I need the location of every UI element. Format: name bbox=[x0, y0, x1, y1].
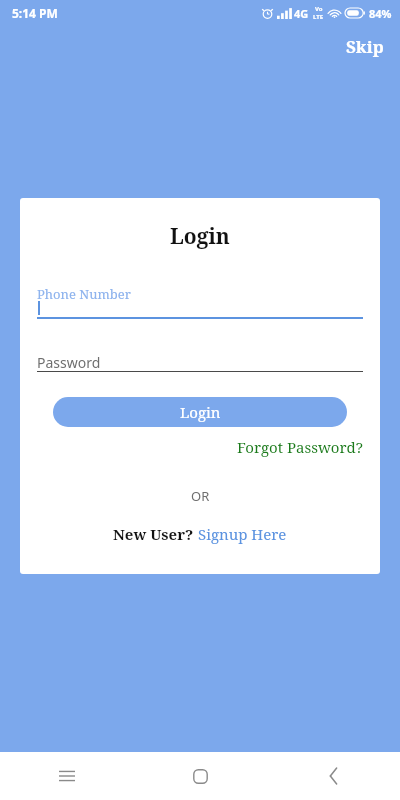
staticText: Skip bbox=[346, 35, 384, 58]
button[interactable]: Home bbox=[134, 752, 267, 800]
button[interactable]: Phone Number bbox=[37, 285, 363, 319]
staticText: Login bbox=[170, 222, 230, 251]
button[interactable]: Signup Here bbox=[198, 524, 287, 544]
staticText: OR bbox=[191, 487, 210, 505]
button[interactable]: Login bbox=[53, 397, 347, 427]
staticText: Phone Number bbox=[37, 285, 131, 303]
staticText: Signup Here bbox=[198, 524, 287, 544]
staticText: New User? bbox=[113, 524, 198, 544]
button[interactable]: Recents bbox=[0, 752, 134, 800]
button[interactable]: Password bbox=[37, 353, 363, 372]
staticText: LTE bbox=[313, 13, 324, 21]
button[interactable]: Forgot Password? bbox=[237, 437, 363, 457]
staticText: Vo bbox=[315, 5, 323, 13]
staticText: Password bbox=[37, 353, 101, 372]
staticText: 4G bbox=[294, 6, 309, 21]
button[interactable]: Back bbox=[267, 752, 400, 800]
staticText: 5:14 PM bbox=[12, 5, 58, 21]
staticText: Forgot Password? bbox=[237, 437, 363, 457]
staticText: Login bbox=[180, 402, 221, 422]
button[interactable]: Skip bbox=[330, 31, 400, 62]
staticText: 84% bbox=[369, 6, 392, 21]
